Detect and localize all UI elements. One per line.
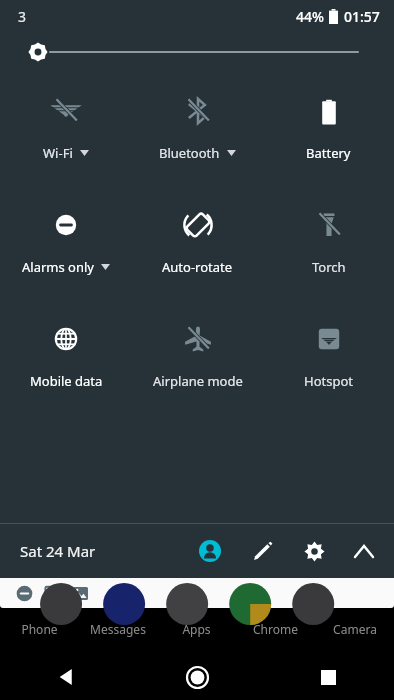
button[interactable]: Alarms only <box>0 208 132 276</box>
button[interactable]: Airplane mode <box>132 322 263 390</box>
button[interactable]: Home <box>132 654 263 700</box>
button[interactable]: Torch <box>263 208 394 276</box>
staticText: 01:57 <box>344 7 380 26</box>
button[interactable]: Mobile data <box>0 322 132 390</box>
button[interactable]: Brightness <box>0 32 394 72</box>
button[interactable]: Edit tiles <box>238 527 286 575</box>
button[interactable]: Recent apps <box>263 654 394 700</box>
staticText: Camera <box>333 621 377 637</box>
other: Do not disturb <box>16 585 33 602</box>
staticText: Bluetooth <box>159 144 220 162</box>
staticText: Mobile data <box>30 372 103 390</box>
button[interactable]: Settings <box>290 527 338 575</box>
other: Screenshot <box>72 585 89 602</box>
button[interactable]: Auto-rotate <box>132 208 263 276</box>
button[interactable]: Wi-Fi <box>0 94 132 162</box>
button[interactable]: Battery <box>263 94 394 162</box>
staticText: Messages <box>90 621 146 637</box>
staticText: Phone <box>21 621 58 637</box>
button[interactable]: User <box>186 527 234 575</box>
button[interactable]: Back <box>0 654 132 700</box>
staticText: Hotspot <box>304 372 353 390</box>
staticText: Auto-rotate <box>162 258 233 276</box>
button[interactable]: Bluetooth <box>132 94 263 162</box>
staticText: Apps <box>182 621 211 637</box>
button[interactable]: Collapse <box>340 527 388 575</box>
staticText: Airplane mode <box>153 372 243 390</box>
staticText: 3 <box>18 7 27 26</box>
staticText: Chrome <box>253 621 298 637</box>
staticText: Torch <box>312 258 346 276</box>
other: Notification list <box>44 585 61 602</box>
staticText: Battery <box>306 144 351 162</box>
staticText: Sat 24 Mar <box>20 541 96 561</box>
staticText: Wi-Fi <box>43 144 73 162</box>
staticText: 44% <box>296 7 324 26</box>
staticText: Alarms only <box>22 258 94 276</box>
button[interactable]: Hotspot <box>263 322 394 390</box>
